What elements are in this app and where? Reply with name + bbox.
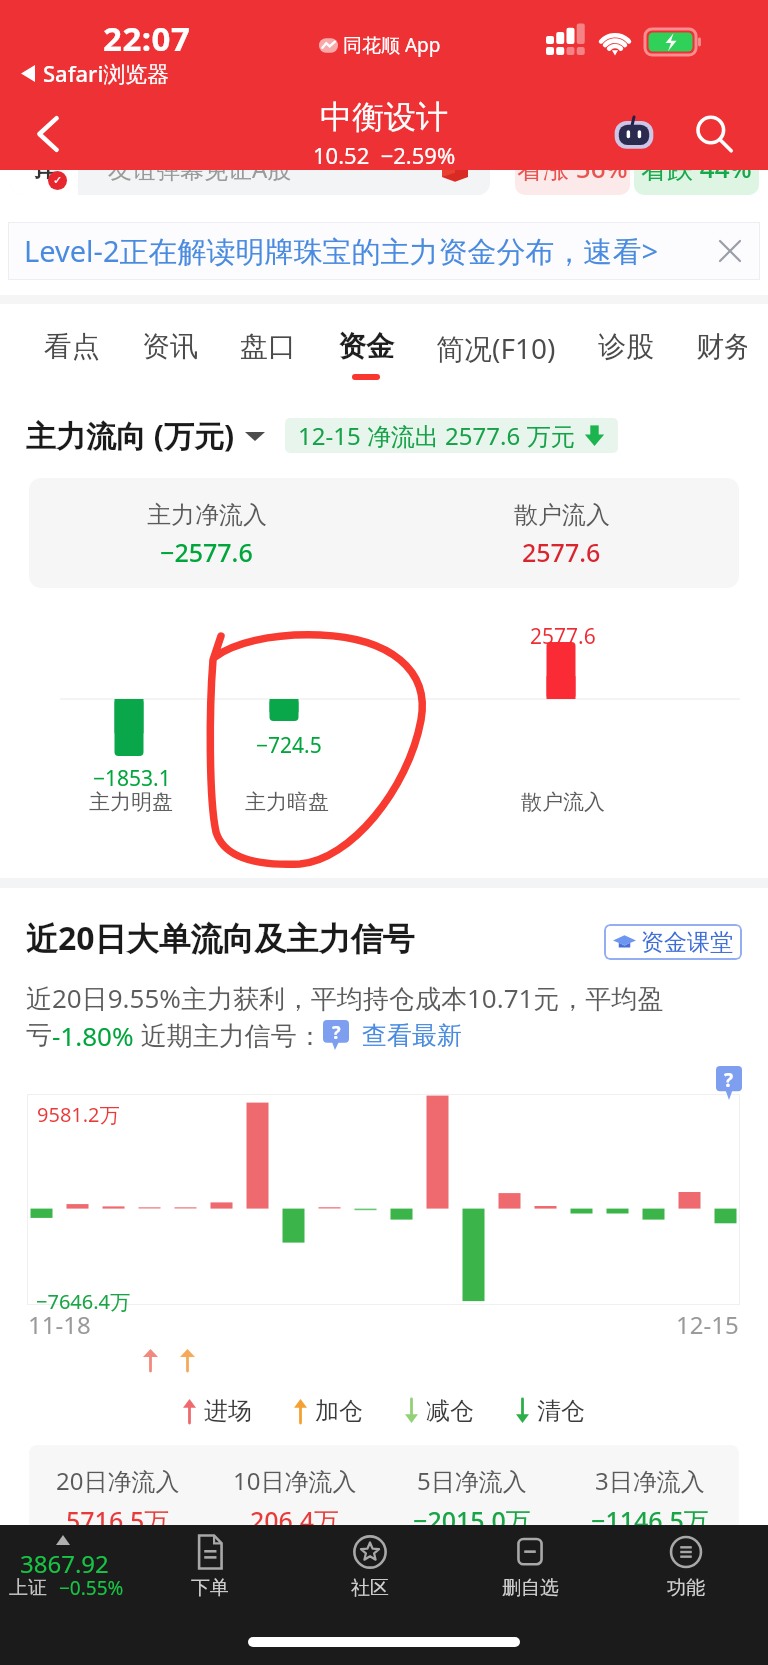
button[interactable]: 弹 bbox=[10, 141, 490, 195]
button[interactable]: Help bbox=[323, 1020, 349, 1050]
button[interactable]: 看涨 56% bbox=[515, 141, 630, 195]
staticText: -1.80% bbox=[52, 1018, 134, 1053]
button[interactable]: 3日净流入 bbox=[561, 1464, 739, 1537]
staticText: −7646.4万 bbox=[36, 1288, 130, 1315]
staticText: 2577.6 bbox=[522, 535, 601, 569]
button[interactable]: 清仓 bbox=[516, 1396, 585, 1426]
staticText: 资金课堂 bbox=[641, 928, 733, 957]
staticText: 简况(F10) bbox=[436, 329, 556, 367]
staticText: 财务 bbox=[696, 329, 747, 364]
staticText: ? bbox=[724, 1067, 734, 1093]
button[interactable]: 3867.92 bbox=[0, 1525, 140, 1665]
staticText: 弹 bbox=[32, 153, 56, 183]
staticText: −2015.0万 bbox=[413, 1503, 531, 1537]
staticText: −1146.5万 bbox=[591, 1503, 709, 1537]
button[interactable]: 资金课堂 bbox=[613, 924, 733, 960]
button[interactable]: 删自选 bbox=[480, 1525, 580, 1600]
button[interactable]: 进场 bbox=[183, 1396, 252, 1426]
staticText: 近20日大单流向及主力信号 bbox=[26, 916, 415, 960]
staticText: 2577.6 bbox=[530, 622, 596, 651]
staticText: 3867.92 bbox=[20, 1547, 109, 1580]
staticText: 10日净流入 bbox=[233, 1464, 357, 1497]
staticText: 资金 bbox=[338, 329, 394, 364]
staticText: 功能 bbox=[667, 1576, 705, 1600]
button[interactable]: 下单 bbox=[160, 1525, 260, 1600]
button[interactable]: 资金 bbox=[317, 303, 415, 380]
staticText: 中衡设计 bbox=[320, 97, 448, 137]
button[interactable]: 功能 bbox=[636, 1525, 736, 1600]
staticText: 近20日9.55%主力获利，平均持仓成本10.71元，平均盈 bbox=[26, 980, 664, 1016]
staticText: 友谊弹幕免证A股 bbox=[108, 152, 292, 185]
staticText: −1853.1 bbox=[93, 764, 171, 793]
staticText: −724.5 bbox=[256, 731, 322, 760]
button[interactable]: 财务 bbox=[675, 303, 768, 380]
staticText: 资讯 bbox=[142, 329, 198, 364]
staticText: 12-15 bbox=[676, 1308, 739, 1341]
staticText: −2577.6 bbox=[160, 535, 253, 569]
staticText: 减仓 bbox=[426, 1396, 474, 1426]
staticText: 22:07 bbox=[103, 16, 191, 61]
button[interactable]: 减仓 bbox=[405, 1396, 474, 1426]
staticText: 删自选 bbox=[502, 1576, 559, 1600]
staticText: ✓ bbox=[53, 174, 63, 187]
staticText: Safari浏览器 bbox=[43, 58, 170, 88]
button[interactable]: Chart help bbox=[716, 1066, 742, 1100]
staticText: 进场 bbox=[204, 1396, 252, 1426]
button[interactable]: 简况(F10) bbox=[415, 303, 577, 383]
staticText: 散户流入 bbox=[521, 789, 605, 815]
staticText: 看跌 44% bbox=[641, 150, 752, 186]
button[interactable]: 看跌 44% bbox=[634, 141, 759, 195]
staticText: 11-18 bbox=[28, 1308, 91, 1341]
staticText: ? bbox=[332, 1020, 341, 1045]
staticText: 清仓 bbox=[537, 1396, 585, 1426]
staticText: 5日净流入 bbox=[417, 1464, 527, 1497]
staticText: 诊股 bbox=[598, 329, 654, 364]
staticText: 同花顺 App bbox=[343, 32, 441, 58]
button[interactable]: 看点 bbox=[23, 303, 121, 380]
staticText: −0.55% bbox=[59, 1575, 124, 1601]
staticText: Level-2正在解读明牌珠宝的主力资金分布，速看> bbox=[24, 231, 659, 271]
button[interactable]: Back bbox=[14, 100, 82, 168]
button[interactable]: Level-2正在解读明牌珠宝的主力资金分布，速看> bbox=[8, 222, 760, 280]
staticText: 主力明盘 bbox=[89, 789, 173, 815]
button[interactable]: 5日净流入 bbox=[383, 1464, 561, 1537]
staticText: 主力净流入 bbox=[147, 500, 267, 530]
staticText: 主力暗盘 bbox=[245, 789, 329, 815]
staticText: 下单 bbox=[191, 1576, 229, 1600]
staticText: 主力流向 (万元) bbox=[26, 415, 235, 456]
button[interactable]: 社区 bbox=[320, 1525, 420, 1600]
staticText: 看涨 56% bbox=[517, 150, 628, 186]
button[interactable]: Close banner bbox=[708, 229, 752, 273]
button[interactable]: 12-15 净流出 2577.6 万元 bbox=[298, 418, 605, 453]
button[interactable]: 主力流向 (万元) bbox=[26, 415, 265, 456]
staticText: 206.4万 bbox=[250, 1503, 340, 1537]
button[interactable]: 10日净流入 bbox=[206, 1464, 383, 1537]
staticText: 9581.2万 bbox=[37, 1101, 120, 1128]
staticText: 5716.5万 bbox=[66, 1503, 170, 1537]
button[interactable]: AI assistant bbox=[607, 107, 661, 161]
staticText: 加仓 bbox=[315, 1396, 363, 1426]
staticText: 10.52 −2.59% bbox=[313, 140, 456, 170]
staticText: 社区 bbox=[351, 1576, 389, 1600]
button[interactable]: Search bbox=[687, 107, 741, 161]
staticText: 看点 bbox=[44, 329, 100, 364]
staticText: 散户流入 bbox=[514, 500, 610, 530]
staticText: 12-15 净流出 2577.6 万元 bbox=[298, 419, 575, 452]
staticText: 近期主力信号： bbox=[134, 1017, 323, 1053]
button[interactable]: 资讯 bbox=[121, 303, 219, 380]
button[interactable]: 盘口 bbox=[219, 303, 317, 380]
staticText: 上证 bbox=[9, 1576, 47, 1600]
staticText: 查看最新 bbox=[362, 1020, 462, 1051]
button[interactable]: 诊股 bbox=[577, 303, 675, 380]
staticText: 3日净流入 bbox=[595, 1464, 705, 1497]
staticText: 盘口 bbox=[240, 329, 296, 364]
staticText: 20日净流入 bbox=[56, 1464, 180, 1497]
button[interactable]: 20日净流入 bbox=[29, 1464, 206, 1537]
button[interactable]: 加仓 bbox=[294, 1396, 363, 1426]
staticText: 亏 bbox=[26, 1019, 52, 1052]
